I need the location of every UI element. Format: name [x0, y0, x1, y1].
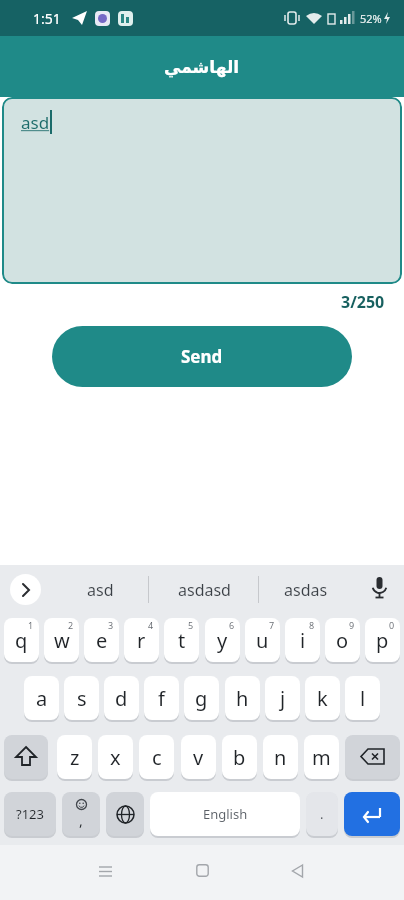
staticText: v	[193, 744, 204, 771]
button[interactable]: ?123	[4, 792, 56, 836]
staticText: y	[217, 627, 228, 654]
staticText: asd	[87, 579, 114, 601]
button[interactable]: n	[263, 735, 298, 779]
button[interactable]: l	[345, 676, 380, 720]
staticText: q	[15, 627, 28, 654]
button[interactable]: b	[222, 735, 257, 779]
button[interactable]: c	[139, 735, 174, 779]
button[interactable]: Send	[52, 326, 352, 387]
button[interactable]: o	[325, 618, 360, 662]
staticText: English	[203, 805, 248, 823]
staticText: ,	[79, 811, 83, 830]
button[interactable]: a	[24, 676, 59, 720]
staticText: 52%	[360, 11, 382, 26]
button[interactable]	[196, 864, 209, 877]
staticText: 9	[349, 619, 355, 631]
staticText: a	[36, 685, 48, 712]
button[interactable]: d	[104, 676, 139, 720]
button[interactable]: h	[225, 676, 260, 720]
staticText: t	[178, 627, 186, 654]
button[interactable]	[106, 792, 144, 836]
button[interactable]: e	[84, 618, 119, 662]
staticText: 0	[389, 619, 395, 631]
staticText: d	[115, 685, 128, 712]
staticText: z	[70, 744, 80, 771]
staticText: Send	[181, 345, 223, 368]
staticText: 3/250	[341, 291, 385, 313]
staticText: الهاشمي	[164, 57, 240, 77]
staticText: i	[300, 627, 306, 654]
button[interactable]: i	[285, 618, 320, 662]
button[interactable]: p	[365, 618, 400, 662]
staticText: s	[77, 685, 87, 712]
staticText: n	[274, 744, 287, 771]
staticText: 6	[229, 619, 235, 631]
button[interactable]: f	[144, 676, 179, 720]
button[interactable]	[344, 792, 400, 836]
staticText: h	[236, 685, 249, 712]
staticText: b	[233, 744, 246, 771]
staticText: g	[195, 685, 208, 712]
button[interactable]: English	[150, 792, 300, 836]
staticText: 4	[148, 619, 154, 631]
button[interactable]: g	[184, 676, 219, 720]
button[interactable]: m	[304, 735, 339, 779]
button[interactable]	[291, 864, 304, 878]
staticText: c	[152, 744, 162, 771]
staticText: .	[320, 805, 324, 823]
button[interactable]: asd	[62, 574, 138, 605]
button[interactable]	[10, 574, 41, 605]
button[interactable]: r	[124, 618, 159, 662]
button[interactable]: asd	[2, 97, 402, 284]
staticText: m	[312, 744, 331, 771]
staticText: ?123	[16, 805, 44, 823]
staticText: asdas	[284, 579, 328, 601]
staticText: j	[280, 685, 286, 712]
button[interactable]: .	[306, 792, 338, 836]
staticText: f	[158, 685, 165, 712]
staticText: w	[54, 627, 70, 654]
button[interactable]	[4, 735, 48, 779]
button[interactable]: y	[205, 618, 240, 662]
staticText: 8	[309, 619, 315, 631]
staticText: l	[360, 685, 366, 712]
button[interactable]: t	[164, 618, 199, 662]
button[interactable]: asdasd	[158, 574, 250, 605]
button[interactable]: ,	[62, 792, 100, 836]
staticText: asd	[21, 111, 50, 134]
button[interactable]: x	[98, 735, 133, 779]
staticText: e	[96, 627, 108, 654]
staticText: 5	[188, 619, 194, 631]
staticText: u	[256, 627, 269, 654]
staticText: 3	[108, 619, 114, 631]
staticText: 1	[28, 619, 34, 631]
staticText: asdasd	[178, 579, 231, 601]
staticText: 7	[269, 619, 275, 631]
button[interactable]	[345, 735, 400, 779]
staticText: k	[317, 685, 328, 712]
button[interactable]: k	[305, 676, 340, 720]
button[interactable]: z	[57, 735, 92, 779]
button[interactable]: asdas	[268, 574, 344, 605]
button[interactable]	[99, 865, 112, 878]
staticText: x	[110, 744, 121, 771]
staticText: o	[336, 627, 349, 654]
staticText: p	[376, 627, 389, 654]
button[interactable]: s	[64, 676, 99, 720]
button[interactable]: w	[44, 618, 79, 662]
staticText: 1:51	[33, 9, 61, 28]
button[interactable]: q	[4, 618, 39, 662]
button[interactable]	[371, 577, 388, 603]
staticText: 2	[68, 619, 74, 631]
staticText: r	[137, 627, 146, 654]
button[interactable]: j	[265, 676, 300, 720]
button[interactable]: u	[245, 618, 280, 662]
button[interactable]: v	[181, 735, 216, 779]
